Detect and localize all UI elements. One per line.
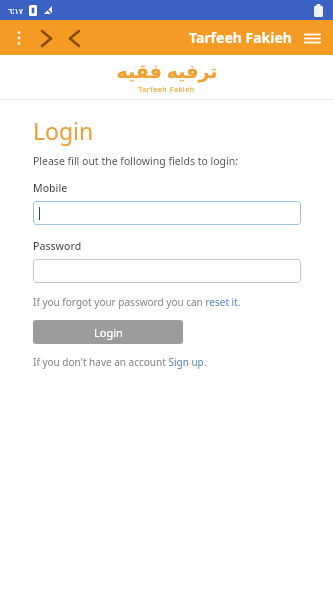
button[interactable]: More options	[9, 24, 29, 52]
button[interactable]: If you don't have an account Sign up.	[33, 355, 207, 369]
staticText: ٦:١٧	[8, 5, 24, 16]
staticText: Please fill out the following fields to …	[33, 154, 239, 168]
staticText: Password	[33, 239, 82, 253]
button[interactable]	[33, 259, 301, 283]
staticText: Login	[94, 325, 123, 340]
button[interactable]: Back	[61, 24, 87, 52]
staticText: ترفيه فقيه	[116, 58, 218, 84]
staticText: Tarfeeh Fakieh	[138, 85, 195, 95]
button[interactable]: Menu	[297, 23, 327, 53]
button[interactable]: Forward	[33, 24, 59, 52]
button[interactable]: Login	[33, 320, 183, 344]
staticText: Tarfeeh Fakieh	[189, 28, 292, 47]
button[interactable]	[33, 201, 301, 225]
staticText: Login	[33, 115, 94, 146]
staticText: Mobile	[33, 181, 68, 195]
button[interactable]: If you forgot your password you can rese…	[33, 295, 241, 309]
